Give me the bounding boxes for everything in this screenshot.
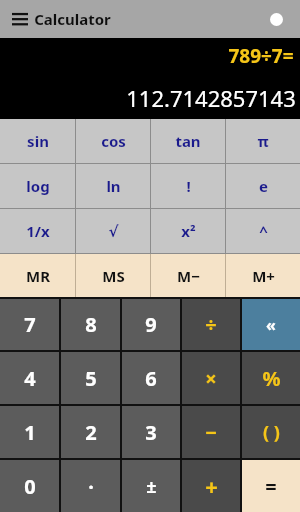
staticText: MR: [26, 266, 50, 286]
button[interactable]: ( ): [242, 406, 300, 458]
staticText: √: [108, 223, 119, 240]
button[interactable]: −: [182, 406, 240, 458]
staticText: M−: [177, 266, 200, 286]
staticText: cos: [101, 131, 126, 151]
button[interactable]: 1: [0, 406, 59, 458]
staticText: %: [262, 365, 281, 392]
button[interactable]: x²: [151, 209, 225, 253]
staticText: M+: [252, 266, 275, 286]
button[interactable]: 6: [122, 352, 180, 404]
button[interactable]: ^: [226, 209, 300, 253]
button[interactable]: 9: [122, 299, 180, 350]
staticText: «: [266, 314, 276, 336]
staticText: !: [186, 176, 191, 196]
button[interactable]: 3: [122, 406, 180, 458]
staticText: sin: [27, 131, 49, 151]
button[interactable]: π: [226, 119, 300, 163]
button[interactable]: sin: [0, 119, 75, 163]
button[interactable]: tan: [151, 119, 225, 163]
staticText: π: [257, 131, 269, 151]
staticText: log: [26, 176, 50, 196]
button[interactable]: 1/x: [0, 209, 75, 253]
button[interactable]: MS: [76, 254, 150, 297]
button[interactable]: MR: [0, 254, 75, 297]
staticText: 9: [145, 311, 157, 338]
staticText: ×: [205, 365, 217, 392]
staticText: 7: [24, 311, 36, 338]
staticText: e: [259, 176, 268, 196]
staticText: 789÷7=: [228, 43, 294, 69]
staticText: ( ): [263, 420, 280, 445]
staticText: +: [205, 471, 218, 501]
button[interactable]: Menu: [6, 5, 34, 33]
button[interactable]: 7: [0, 299, 59, 350]
staticText: −: [205, 419, 217, 446]
button[interactable]: Options: [264, 7, 288, 31]
staticText: ±: [146, 474, 157, 499]
staticText: 1: [24, 419, 36, 446]
staticText: tan: [175, 131, 201, 151]
staticText: 112.7142857143: [126, 83, 296, 113]
button[interactable]: ·: [61, 460, 120, 512]
staticText: ÷: [205, 311, 217, 338]
button[interactable]: cos: [76, 119, 150, 163]
staticText: ·: [88, 473, 94, 500]
button[interactable]: log: [0, 164, 75, 208]
button[interactable]: M+: [226, 254, 300, 297]
staticText: 0: [24, 473, 36, 500]
staticText: ln: [106, 176, 121, 196]
staticText: 6: [145, 365, 157, 392]
button[interactable]: +: [182, 460, 240, 512]
button[interactable]: e: [226, 164, 300, 208]
button[interactable]: 5: [61, 352, 120, 404]
button[interactable]: 8: [61, 299, 120, 350]
button[interactable]: !: [151, 164, 225, 208]
button[interactable]: ÷: [182, 299, 240, 350]
staticText: 1/x: [26, 221, 50, 241]
button[interactable]: %: [242, 352, 300, 404]
staticText: Calculator: [34, 9, 111, 29]
staticText: ^: [259, 221, 268, 241]
staticText: 2: [85, 419, 97, 446]
staticText: 8: [85, 311, 97, 338]
button[interactable]: M−: [151, 254, 225, 297]
staticText: =: [265, 473, 277, 500]
staticText: x²: [181, 221, 196, 241]
staticText: 3: [145, 419, 157, 446]
button[interactable]: Backspace: [242, 299, 300, 350]
staticText: MS: [102, 266, 125, 286]
button[interactable]: ±: [122, 460, 180, 512]
staticText: 5: [85, 365, 97, 392]
button[interactable]: 2: [61, 406, 120, 458]
button[interactable]: 4: [0, 352, 59, 404]
staticText: 4: [24, 365, 36, 392]
button[interactable]: ln: [76, 164, 150, 208]
button[interactable]: =: [242, 460, 300, 512]
button[interactable]: √: [76, 209, 150, 253]
button[interactable]: 0: [0, 460, 59, 512]
button[interactable]: ×: [182, 352, 240, 404]
